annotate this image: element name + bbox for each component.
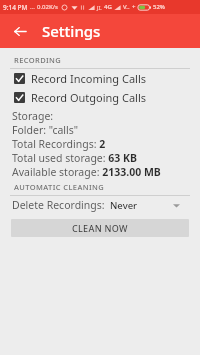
staticText: Never [110,199,138,212]
staticText: Record Incoming Calls [31,71,147,86]
staticText: 0.02K/s [37,3,58,11]
staticText: Delete Recordings: [12,198,105,212]
staticText: Available storage: 2133.00 MB [12,165,161,179]
staticText: V.. [123,3,130,11]
staticText: 4G [104,3,112,11]
staticText: ... [30,3,35,11]
staticText: 9:14 PM [3,3,28,12]
button[interactable]: Record Incoming Calls [0,69,200,88]
staticText: JI. [97,4,102,11]
staticText: Total used storage: 63 KB [12,151,138,165]
button[interactable]: Record Outgoing Calls [0,88,200,107]
staticText: Total Recordings: 2 [12,137,106,151]
staticText: + [132,3,136,11]
button[interactable]: CLEAN NOW [11,219,189,237]
button[interactable]: Back [6,17,34,45]
staticText: AUTOMATIC CLEANING [14,182,105,192]
staticText: CLEAN NOW [72,222,128,234]
staticText: RECORDING [14,55,62,65]
staticText: Settings [42,21,101,41]
staticText: 52% [153,3,165,11]
staticText: Record Outgoing Calls [31,90,147,105]
staticText: Storage: [12,109,54,123]
staticText: Folder: "calls" [12,123,79,137]
button[interactable]: Never [110,197,180,213]
